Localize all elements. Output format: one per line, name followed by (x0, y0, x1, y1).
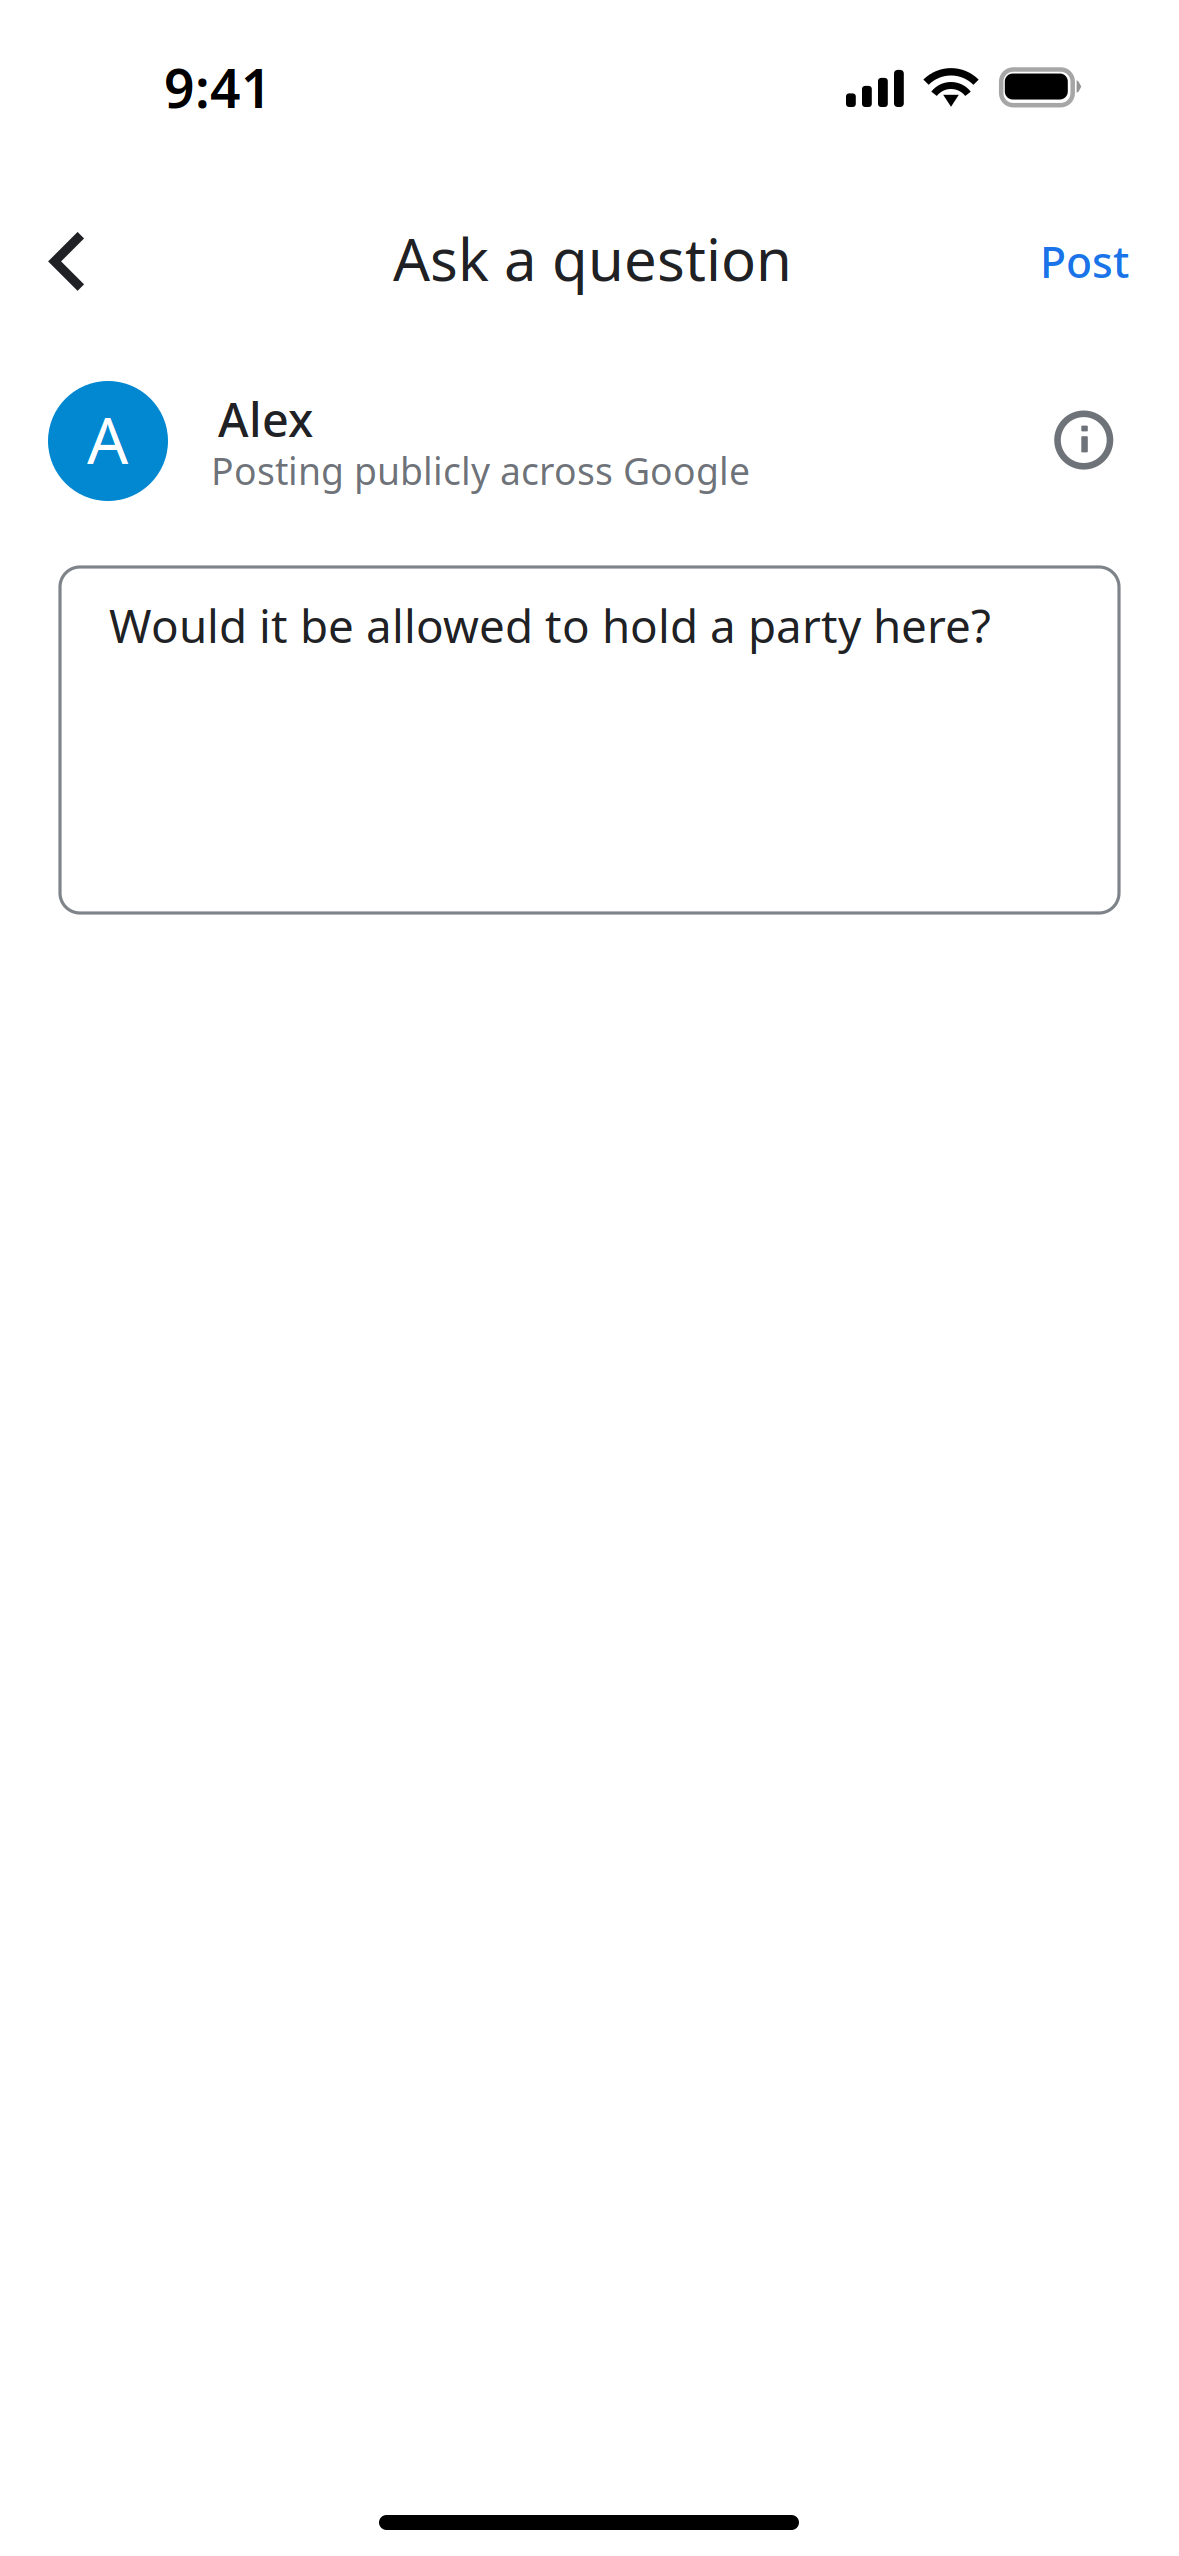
button[interactable]: Back (16, 195, 146, 325)
staticText: Would it be allowed to hold a party here… (109, 594, 991, 656)
staticText: Alex (218, 387, 313, 451)
staticText: Post (1040, 232, 1129, 291)
staticText: 9:41 (164, 51, 272, 124)
staticText: A (87, 395, 128, 483)
button[interactable]: Post (1000, 195, 1179, 325)
staticText: Ask a question (393, 219, 792, 298)
button[interactable]: About posting publicly across Google (1028, 386, 1138, 496)
staticText: Posting publicly across Google (211, 445, 750, 496)
button[interactable]: Would it be allowed to hold a party here… (60, 567, 1119, 913)
